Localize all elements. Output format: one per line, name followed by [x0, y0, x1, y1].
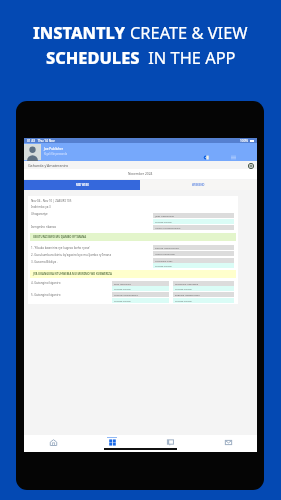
staticText: Tuyishime Papy — [155, 259, 173, 262]
button[interactable]: Eugenie Uwizeyimana — [173, 292, 234, 297]
staticText: SCHEDULES — [46, 46, 144, 68]
staticText: Eugenie Uwizeyimana — [175, 293, 200, 296]
staticText: 3. Gusoma Bibiliya . — [31, 260, 58, 264]
button[interactable]: Choose Person — [153, 219, 234, 224]
button[interactable]: Ruth Mparirwa — [112, 281, 169, 286]
button[interactable]: Choose Person — [173, 298, 234, 303]
button[interactable]: Adrien Nshangirimana — [153, 225, 234, 230]
staticText: Choose Person — [114, 299, 131, 302]
staticText: WEEKEND — [192, 183, 205, 187]
button[interactable]: WEEKEND — [140, 180, 257, 190]
button[interactable]: Messages — [199, 435, 257, 452]
staticText: November 2024 — [128, 172, 153, 176]
staticText: 4. Gutangira ikiganiro — [31, 281, 61, 285]
button[interactable]: Albert Hakizimani — [153, 251, 234, 256]
staticText: 01:33 Thu 14 Nov — [27, 139, 55, 143]
staticText: Albert Hakizimani — [155, 252, 175, 255]
button[interactable]: Meetings — [141, 435, 199, 452]
staticText: MID WEEK — [76, 183, 89, 187]
button[interactable]: Choose Person — [112, 298, 169, 303]
staticText: Indirimbo ya 3 — [31, 205, 51, 209]
staticText: Adrien Nshangirimana — [155, 226, 181, 229]
staticText: JYA UKANGURA NTUHWEMA MU MURIMO WO KUBWI… — [33, 272, 112, 276]
staticText: Jules Habukunda — [155, 214, 174, 217]
button[interactable]: Chantal Mukamazera — [112, 292, 169, 297]
button[interactable]: Choose Person — [153, 263, 234, 268]
staticText: INSTANTLY — [33, 21, 130, 43]
staticText: Chantal Mukamazera — [114, 293, 138, 296]
button[interactable]: Refresh — [247, 162, 254, 169]
staticText: CREATE & VIEW — [130, 21, 248, 43]
staticText: Joe Publisher — [44, 147, 63, 151]
button[interactable]: Share schedule — [200, 151, 212, 163]
staticText: Ruth Mparirwa — [114, 282, 131, 285]
button[interactable]: Fabrice Ndayishimiye — [153, 245, 234, 250]
staticText: Choose Person — [114, 287, 131, 290]
staticText: Kigali Kinyarwanda — [44, 152, 68, 156]
staticText: 2. Gucukumbura ibintu by'agaciro byo mu … — [31, 253, 112, 257]
staticText: Seraphine Uwiragiye — [175, 282, 199, 285]
staticText: 100% — [240, 139, 249, 143]
staticText: Choose Person — [155, 264, 172, 267]
staticText: 1. 'Yibuka kwanirira rye kugeza ibeho ry… — [31, 246, 91, 250]
button[interactable]: Schedules — [83, 435, 141, 452]
staticText: 5. Gutangira ikiganiro — [31, 293, 61, 297]
staticText: Choose Person — [155, 220, 172, 223]
staticText: Isengesho ribanza — [31, 225, 56, 229]
button[interactable]: MID WEEK — [24, 180, 140, 190]
button[interactable]: Menu — [227, 151, 239, 163]
staticText: Uhagarariye — [31, 212, 48, 216]
button[interactable]: Jules Habukunda — [153, 213, 234, 218]
staticText: Fabrice Ndayishimiye — [155, 246, 179, 249]
button[interactable]: Choose Person — [112, 286, 169, 291]
staticText: Choose Person — [175, 287, 192, 290]
button[interactable]: Home — [24, 435, 83, 452]
staticText: Gahunda y'Amateraniro — [28, 163, 69, 168]
staticText: Nov 04 - Nov 10 | ZABURI 105 — [31, 199, 72, 203]
button[interactable]: Tuyishime Papy — [153, 258, 234, 263]
button[interactable]: Choose Person — [173, 286, 234, 291]
staticText: UBUTUNZI BWO MU IJAMBO RY'IMANA — [33, 235, 87, 239]
button[interactable]: Seraphine Uwiragiye — [173, 281, 234, 286]
staticText: IN THE APP — [144, 46, 236, 68]
staticText: Choose Person — [175, 299, 192, 302]
